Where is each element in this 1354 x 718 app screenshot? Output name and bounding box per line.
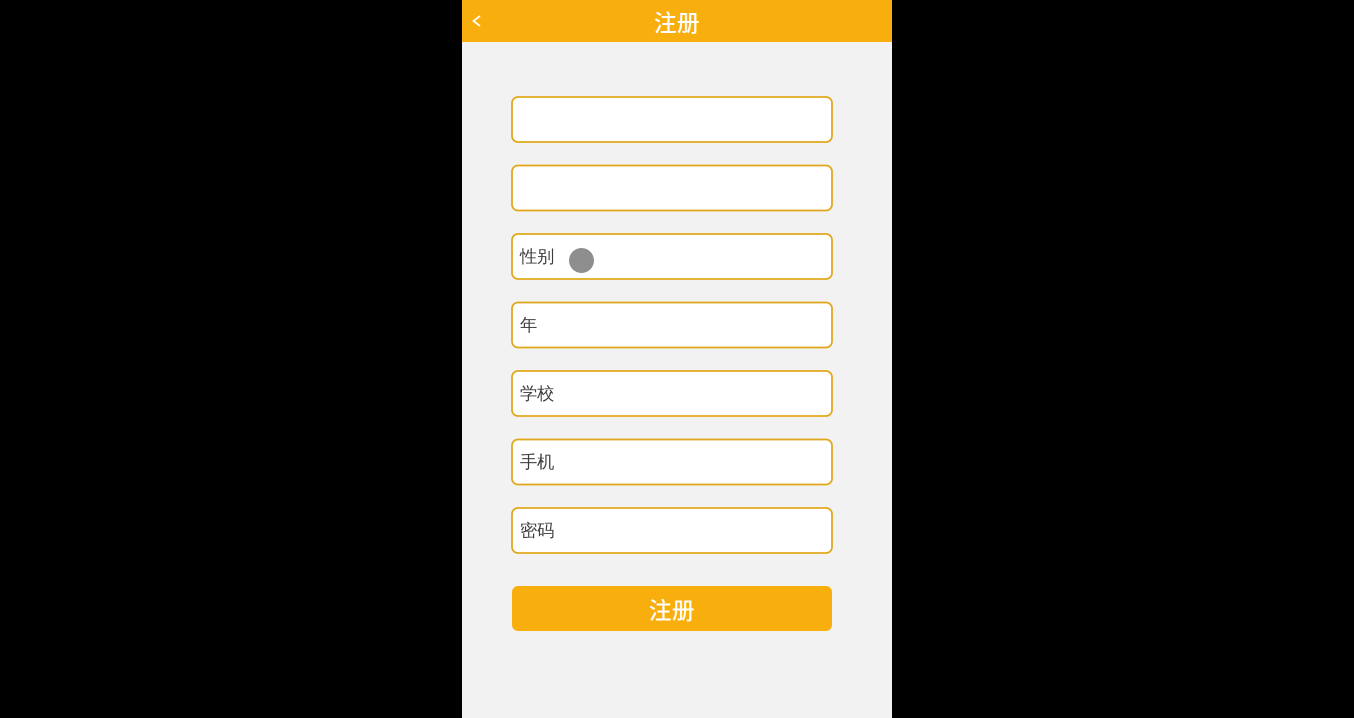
button[interactable]: 注册 — [512, 586, 832, 631]
button[interactable]: 年 — [512, 302, 832, 347]
button[interactable]: 手机 — [512, 439, 832, 484]
button[interactable] — [512, 97, 832, 142]
staticText: 手机 — [520, 451, 554, 473]
staticText: 注册 — [654, 5, 700, 37]
button[interactable]: 性别 — [512, 234, 832, 279]
staticText: 年 — [520, 314, 537, 336]
button[interactable] — [512, 165, 832, 210]
button[interactable]: 学校 — [512, 371, 832, 416]
staticText: 密码 — [520, 520, 554, 541]
button[interactable]: 密码 — [512, 508, 832, 553]
staticText: 性别 — [520, 246, 554, 267]
staticText: 学校 — [520, 383, 554, 404]
staticText: 注册 — [649, 592, 695, 625]
button[interactable]: Back — [462, 0, 492, 42]
